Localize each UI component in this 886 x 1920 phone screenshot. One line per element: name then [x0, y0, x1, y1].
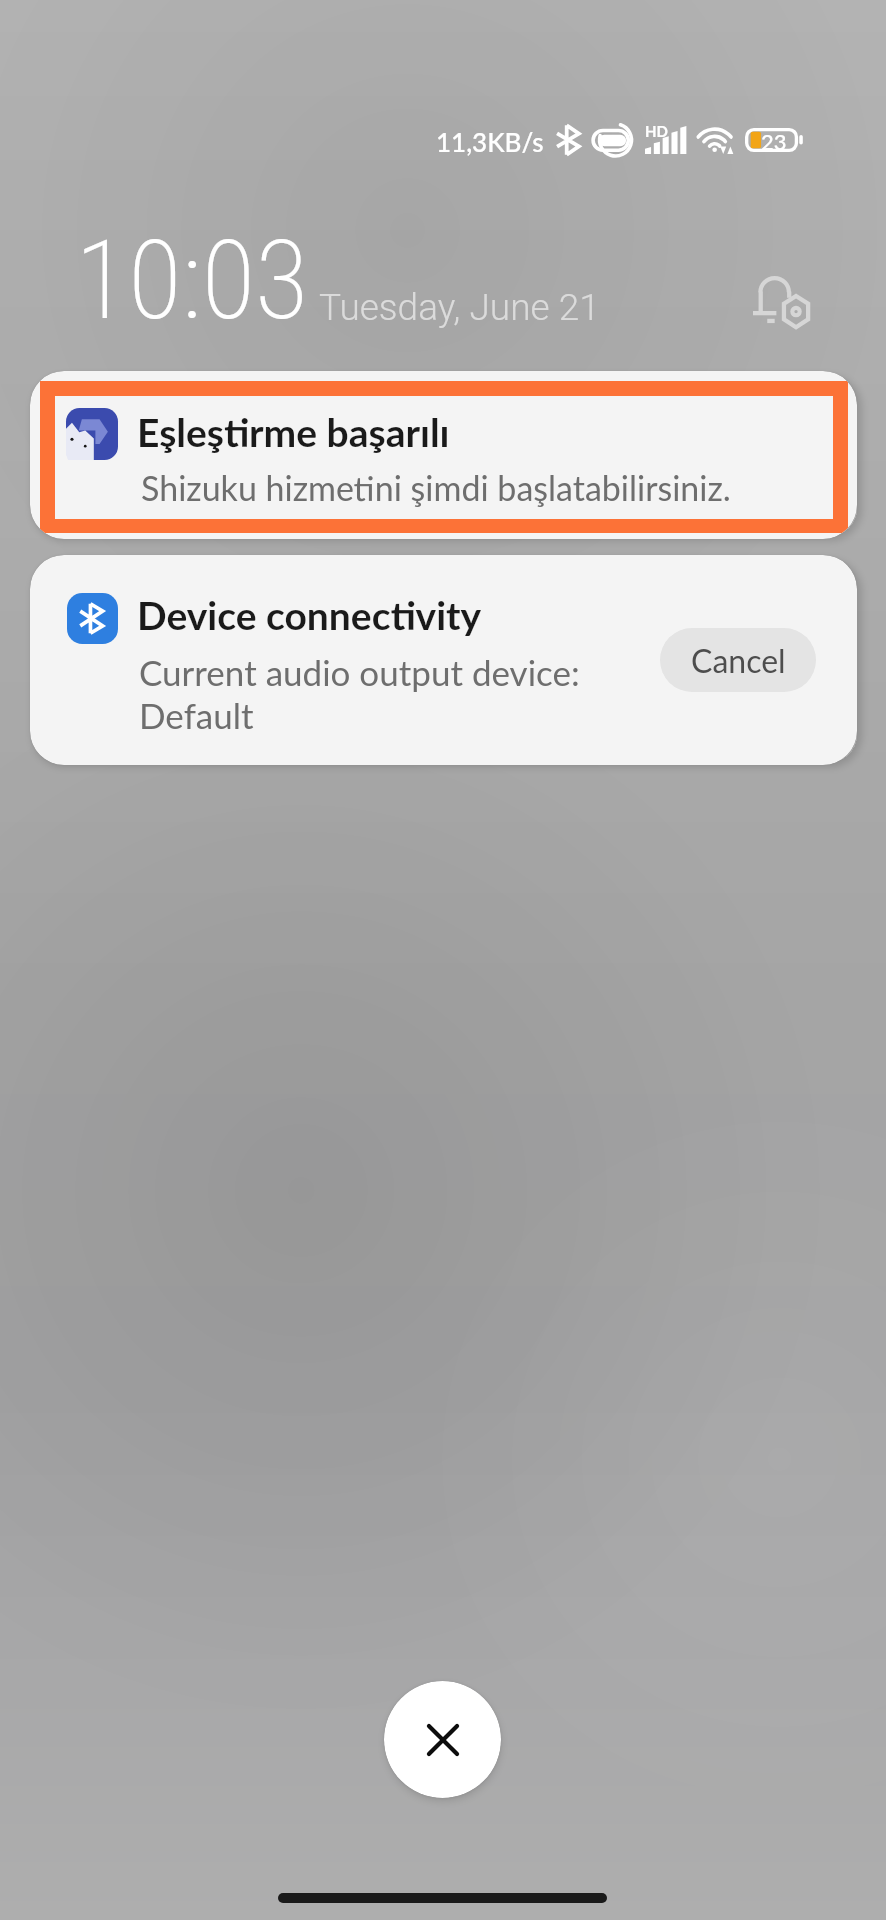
button[interactable]: Notification settings [739, 261, 823, 345]
staticText: Cancel [691, 641, 786, 679]
staticText: HD [645, 122, 668, 140]
staticText: 11,3KB/s [436, 126, 544, 157]
button[interactable]: Eşleştirme başarılı [30, 371, 857, 539]
staticText: 10:03 [75, 216, 309, 345]
button[interactable]: Clear all notifications [384, 1681, 501, 1798]
button[interactable]: Cancel [660, 628, 816, 692]
staticText: Tuesday, June 21 [319, 286, 600, 329]
staticText: 23 [761, 128, 787, 152]
staticText: Eşleştirme başarılı [137, 409, 450, 456]
staticText: Device connectivity [137, 592, 482, 639]
staticText: Current audio output device: Default [139, 651, 580, 737]
button[interactable]: Device connectivity [30, 555, 857, 765]
staticText: Shizuku hizmetini şimdi başlatabilirsini… [141, 467, 731, 508]
